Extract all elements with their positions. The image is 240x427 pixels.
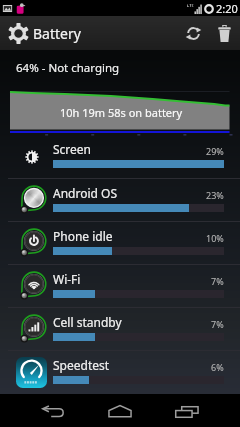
staticText: Phone idle [53,228,113,244]
staticText: 64% - Not charging [16,60,120,76]
staticText: Wi-Fi [53,271,81,287]
staticText: Android OS [53,185,117,201]
staticText: 10h 19m 58s on battery [60,105,183,120]
staticText: 7% [211,275,224,287]
staticText: Cell standby [53,314,122,330]
staticText: Screen [53,141,92,157]
staticText: 23% [206,189,224,201]
button[interactable]: Screen [0,135,240,178]
staticText: 2:20 [216,1,238,16]
button[interactable]: Battery [8,23,81,44]
staticText: 29% [206,145,224,157]
staticText: 7% [211,318,224,330]
button[interactable]: Recent apps [154,394,220,427]
staticText: 6% [211,361,224,373]
staticText: Speedtest [53,357,110,373]
button[interactable]: Home [87,394,153,427]
button[interactable]: Speedtest [0,351,240,393]
button[interactable]: Cell standby [0,308,240,350]
staticText: 10% [206,232,224,244]
button[interactable]: Wi-Fi [0,265,240,307]
button[interactable]: Back [20,394,86,427]
button[interactable]: Phone idle [0,222,240,264]
staticText: Battery [33,24,81,43]
button[interactable]: Delete [209,16,240,50]
button[interactable]: Refresh [178,16,209,50]
button[interactable]: Android OS [0,179,240,221]
